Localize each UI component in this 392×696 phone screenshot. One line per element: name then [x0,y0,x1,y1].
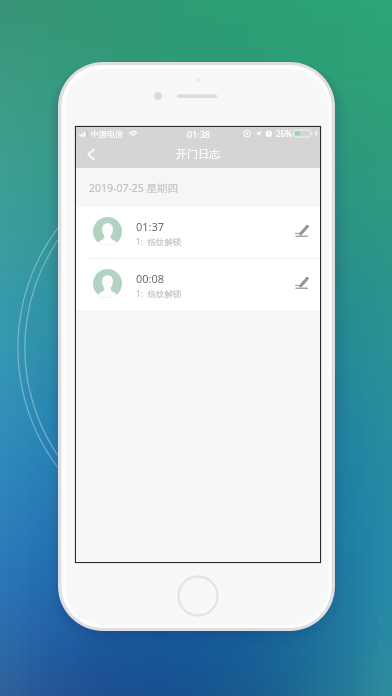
staticText: 中国电信 [91,129,123,139]
staticText: 01:38 [187,128,211,140]
button[interactable]: Back [76,140,106,168]
staticText: 2019-07-25 星期四 [89,181,179,195]
button[interactable]: Edit [293,223,309,237]
staticText: 1: 指纹解锁 [136,288,182,300]
staticText: 1: 指纹解锁 [136,236,182,248]
button[interactable]: 00:08 [76,259,320,310]
button[interactable]: 01:37 [76,207,320,258]
staticText: 开门日志 [176,147,220,161]
button[interactable]: Edit [293,275,309,289]
staticText: 26% [276,128,292,139]
staticText: 01:37 [136,219,165,234]
staticText: 00:08 [136,271,165,286]
